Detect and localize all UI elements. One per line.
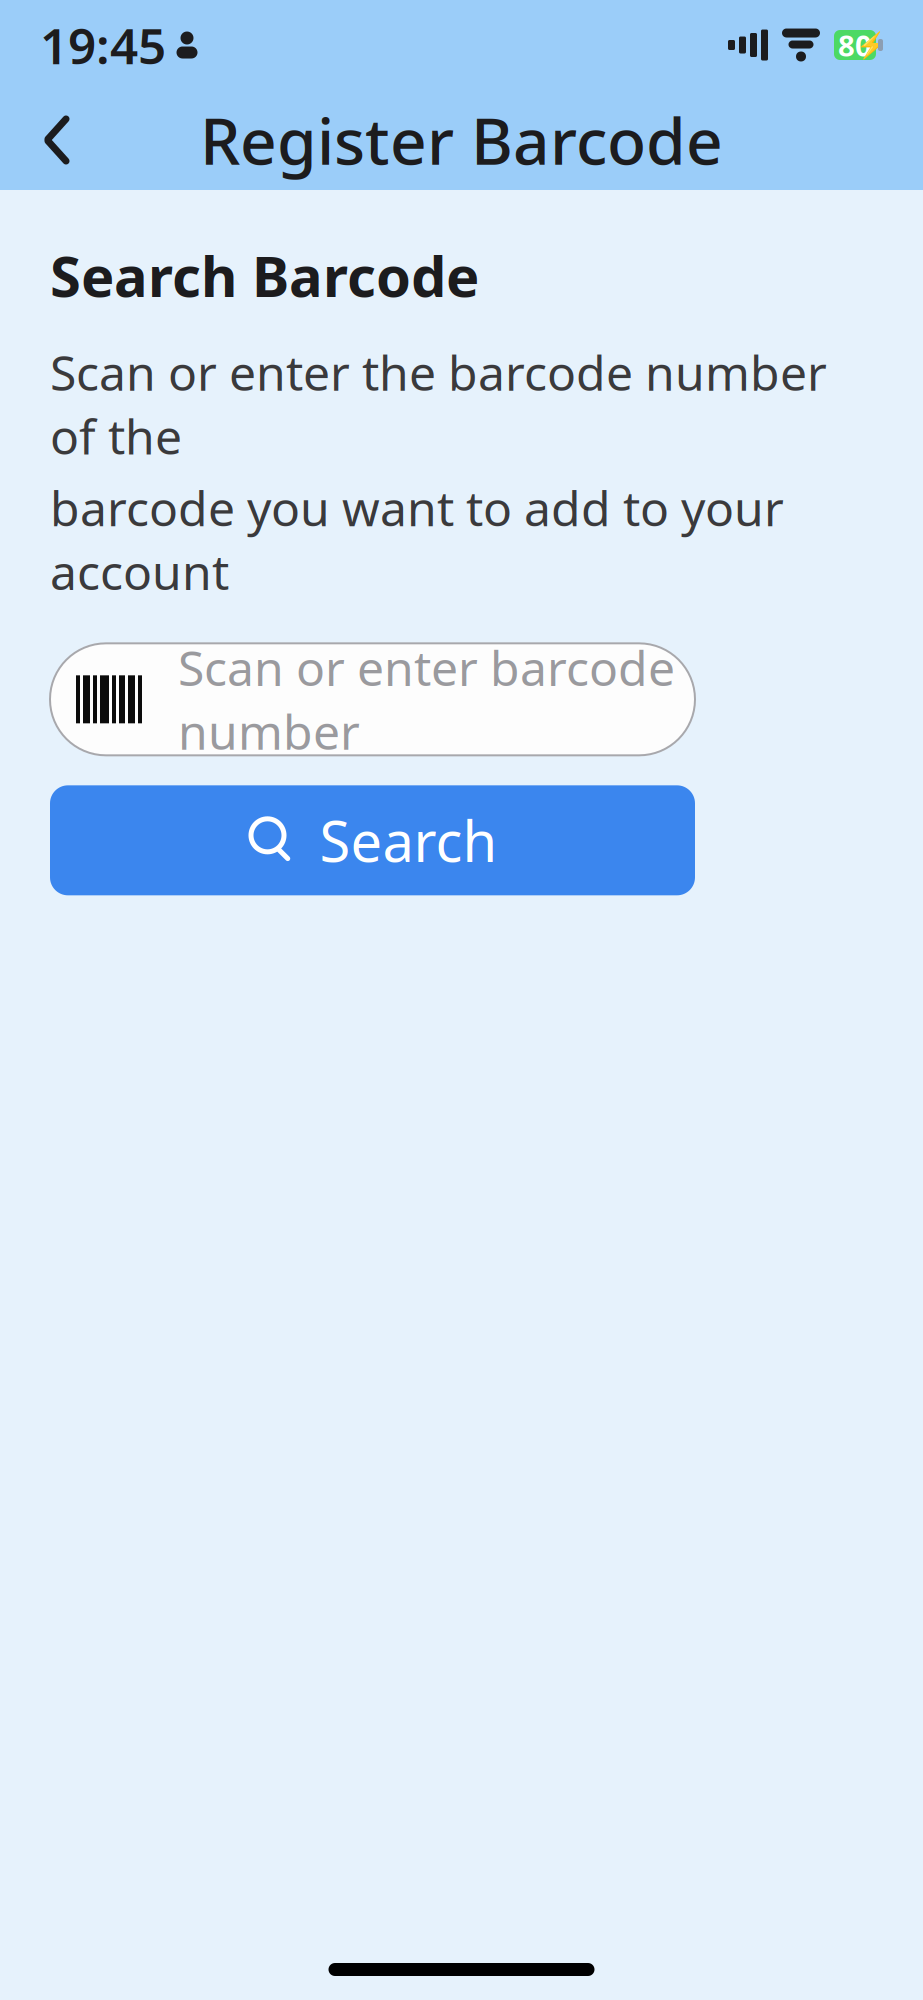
button[interactable]: Back [14,90,100,190]
staticText: 80 [838,25,872,64]
staticText: Search Barcode [50,238,479,312]
button[interactable]: Scan or enter barcode number [50,643,695,755]
staticText: Scan or enter the barcode number of the [50,340,827,468]
staticText: Scan or enter barcode number [178,636,675,763]
staticText: 19:45 [40,12,166,78]
staticText: Register Barcode [200,97,723,182]
staticText: ⚡ [856,30,888,59]
staticText: Search [319,803,497,878]
staticText: barcode you want to add to your account [50,476,784,603]
button[interactable]: Search [50,785,695,895]
